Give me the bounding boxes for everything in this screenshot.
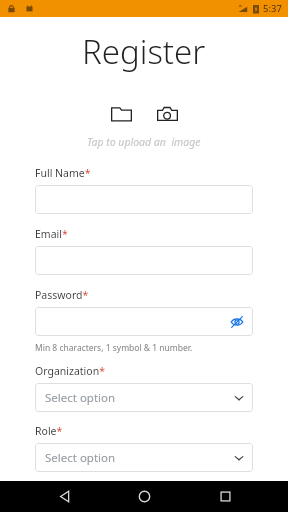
staticText: Min 8 characters, 1 symbol & 1 number.: [35, 342, 193, 354]
staticText: Role*: [35, 424, 63, 438]
button[interactable]: [35, 185, 253, 214]
staticText: Password*: [35, 288, 89, 302]
staticText: Organization*: [35, 364, 105, 378]
button[interactable]: Recent apps: [208, 481, 242, 512]
staticText: 5:37: [263, 2, 282, 15]
button[interactable]: Take photo: [150, 97, 184, 131]
staticText: Select option: [45, 390, 116, 406]
staticText: Tap to upload an image: [87, 135, 201, 149]
staticText: Full Name*: [35, 166, 91, 180]
button[interactable]: Select option: [35, 383, 253, 412]
button[interactable]: [35, 246, 253, 275]
button[interactable]: Select option: [35, 443, 253, 472]
button[interactable]: Back: [47, 481, 81, 512]
staticText: Register: [82, 29, 206, 74]
button[interactable]: Choose from files: [104, 97, 138, 131]
button[interactable]: Home: [127, 481, 161, 512]
button[interactable]: Show password: [35, 307, 253, 336]
staticText: Email*: [35, 227, 68, 241]
staticText: Select option: [45, 450, 116, 466]
button[interactable]: Show password: [229, 314, 245, 330]
